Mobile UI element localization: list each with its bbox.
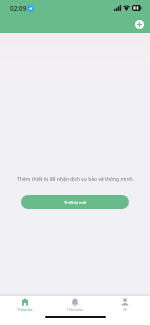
staticText: Thiết bị mới (64, 200, 87, 205)
staticText: 02:09 (10, 4, 27, 13)
staticText: Thông báo (67, 308, 83, 311)
button[interactable]: Add device (135, 20, 144, 29)
staticText: Trang chủ (18, 308, 33, 311)
staticText: Thêm thiết bị để nhận dịch vụ bảo vệ thô… (17, 176, 134, 183)
button[interactable]: Trang chủ (0, 296, 50, 311)
button[interactable]: Thông báo (50, 296, 100, 311)
button[interactable]: Thiết bị mới (21, 195, 129, 209)
button[interactable]: Tôi (100, 296, 150, 311)
staticText: Tôi (123, 308, 128, 311)
